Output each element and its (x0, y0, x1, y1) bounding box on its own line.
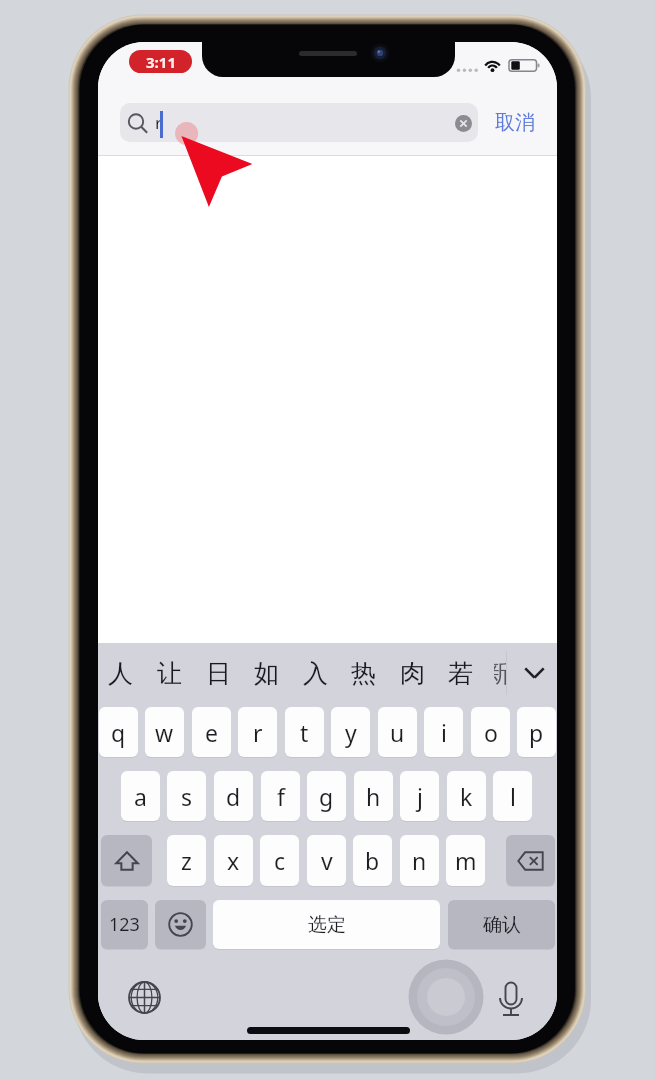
staticText: i (441, 717, 447, 748)
staticText: l (510, 781, 516, 812)
button[interactable]: Recording time 3:11 (129, 50, 192, 73)
button[interactable]: 若 (437, 647, 483, 699)
button[interactable]: q (99, 707, 138, 757)
staticText: m (455, 845, 477, 876)
staticText: t (300, 717, 309, 748)
staticText: 选定 (308, 913, 346, 937)
staticText: g (319, 781, 334, 812)
staticText: 123 (109, 912, 140, 937)
button[interactable]: p (517, 707, 556, 757)
button[interactable]: Shift (101, 835, 152, 886)
staticText: h (366, 781, 381, 812)
staticText: f (277, 781, 285, 812)
button[interactable]: f (261, 771, 300, 821)
staticText: 肉 (400, 658, 425, 689)
staticText: y (345, 717, 357, 748)
button[interactable]: y (331, 707, 370, 757)
staticText: 如 (254, 658, 279, 689)
button[interactable]: i (424, 707, 463, 757)
button[interactable]: Assistive touch (408, 959, 484, 1035)
button[interactable]: c (260, 835, 299, 886)
button[interactable]: m (446, 835, 485, 886)
staticText: b (365, 845, 380, 876)
staticText: 日 (206, 658, 231, 689)
button[interactable]: Clear search text (455, 115, 472, 132)
button[interactable]: Expand candidate list (517, 647, 551, 699)
button[interactable]: 确认 (448, 900, 555, 949)
button[interactable]: 123 (101, 900, 148, 949)
staticText: p (529, 717, 544, 748)
button[interactable]: l (493, 771, 532, 821)
button[interactable]: g (307, 771, 346, 821)
button[interactable]: x (214, 835, 253, 886)
staticText: 3:11 (146, 52, 176, 72)
staticText: 确认 (483, 913, 521, 937)
button[interactable]: 如 (243, 647, 289, 699)
staticText: 新 (494, 658, 497, 689)
staticText: w (155, 717, 174, 748)
staticText: r (253, 717, 263, 748)
button[interactable]: b (353, 835, 392, 886)
button[interactable]: o (471, 707, 510, 757)
button[interactable]: v (307, 835, 346, 886)
staticText: 若 (448, 658, 473, 689)
staticText: 热 (351, 658, 376, 689)
button[interactable]: Emoji keyboard (155, 900, 206, 949)
staticText: o (484, 717, 498, 748)
staticText: j (417, 781, 423, 812)
button[interactable]: Dictation (489, 974, 533, 1016)
button[interactable]: z (167, 835, 206, 886)
button[interactable]: Switch keyboard language (123, 976, 166, 1019)
button[interactable]: j (400, 771, 439, 821)
button[interactable]: 日 (195, 647, 241, 699)
staticText: 让 (157, 658, 182, 689)
button[interactable]: 选定 (213, 900, 440, 949)
button[interactable]: 取消 (490, 103, 540, 142)
button[interactable]: 让 (146, 647, 192, 699)
button[interactable]: h (354, 771, 393, 821)
staticText: 人 (108, 658, 133, 689)
button[interactable]: r (238, 707, 277, 757)
staticText: v (321, 845, 333, 876)
staticText: x (227, 845, 240, 876)
staticText: e (205, 717, 218, 748)
button[interactable]: 入 (292, 647, 338, 699)
staticText: 入 (303, 658, 328, 689)
staticText: n (412, 845, 427, 876)
button[interactable]: 热 (340, 647, 386, 699)
staticText: u (390, 717, 405, 748)
button[interactable]: t (285, 707, 324, 757)
button[interactable]: 肉 (389, 647, 435, 699)
button[interactable]: Backspace (506, 835, 555, 886)
button[interactable]: k (447, 771, 486, 821)
staticText: c (274, 845, 286, 876)
button[interactable]: e (192, 707, 231, 757)
button[interactable]: 人 (98, 647, 143, 699)
staticText: r (155, 111, 163, 134)
staticText: d (226, 781, 241, 812)
button[interactable]: a (121, 771, 160, 821)
button[interactable]: u (378, 707, 417, 757)
staticText: s (181, 781, 193, 812)
staticText: 取消 (495, 110, 535, 135)
staticText: k (460, 781, 473, 812)
button[interactable]: s (167, 771, 206, 821)
staticText: q (111, 717, 126, 748)
staticText: z (181, 845, 192, 876)
staticText: a (134, 781, 147, 812)
button[interactable]: w (145, 707, 184, 757)
button[interactable]: d (214, 771, 253, 821)
button[interactable] (120, 103, 478, 142)
button[interactable]: n (400, 835, 439, 886)
